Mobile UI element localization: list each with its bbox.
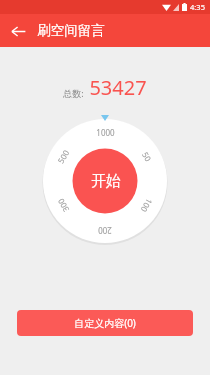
button[interactable]: 开始: [73, 149, 138, 214]
staticText: 开始: [91, 172, 121, 191]
staticText: 100: [139, 197, 155, 214]
staticText: 总数:: [63, 87, 84, 99]
button[interactable]: 自定义内容(0): [17, 310, 193, 336]
staticText: 300: [55, 197, 71, 214]
staticText: 4:35: [190, 2, 205, 12]
staticText: 刷空间留言: [37, 22, 105, 39]
staticText: 自定义内容(0): [74, 316, 136, 330]
staticText: 500: [55, 148, 71, 165]
button[interactable]: Back: [4, 17, 32, 45]
staticText: 50: [140, 149, 154, 164]
staticText: 1000: [96, 127, 115, 138]
staticText: 200: [98, 225, 112, 236]
staticText: 53427: [89, 74, 147, 101]
